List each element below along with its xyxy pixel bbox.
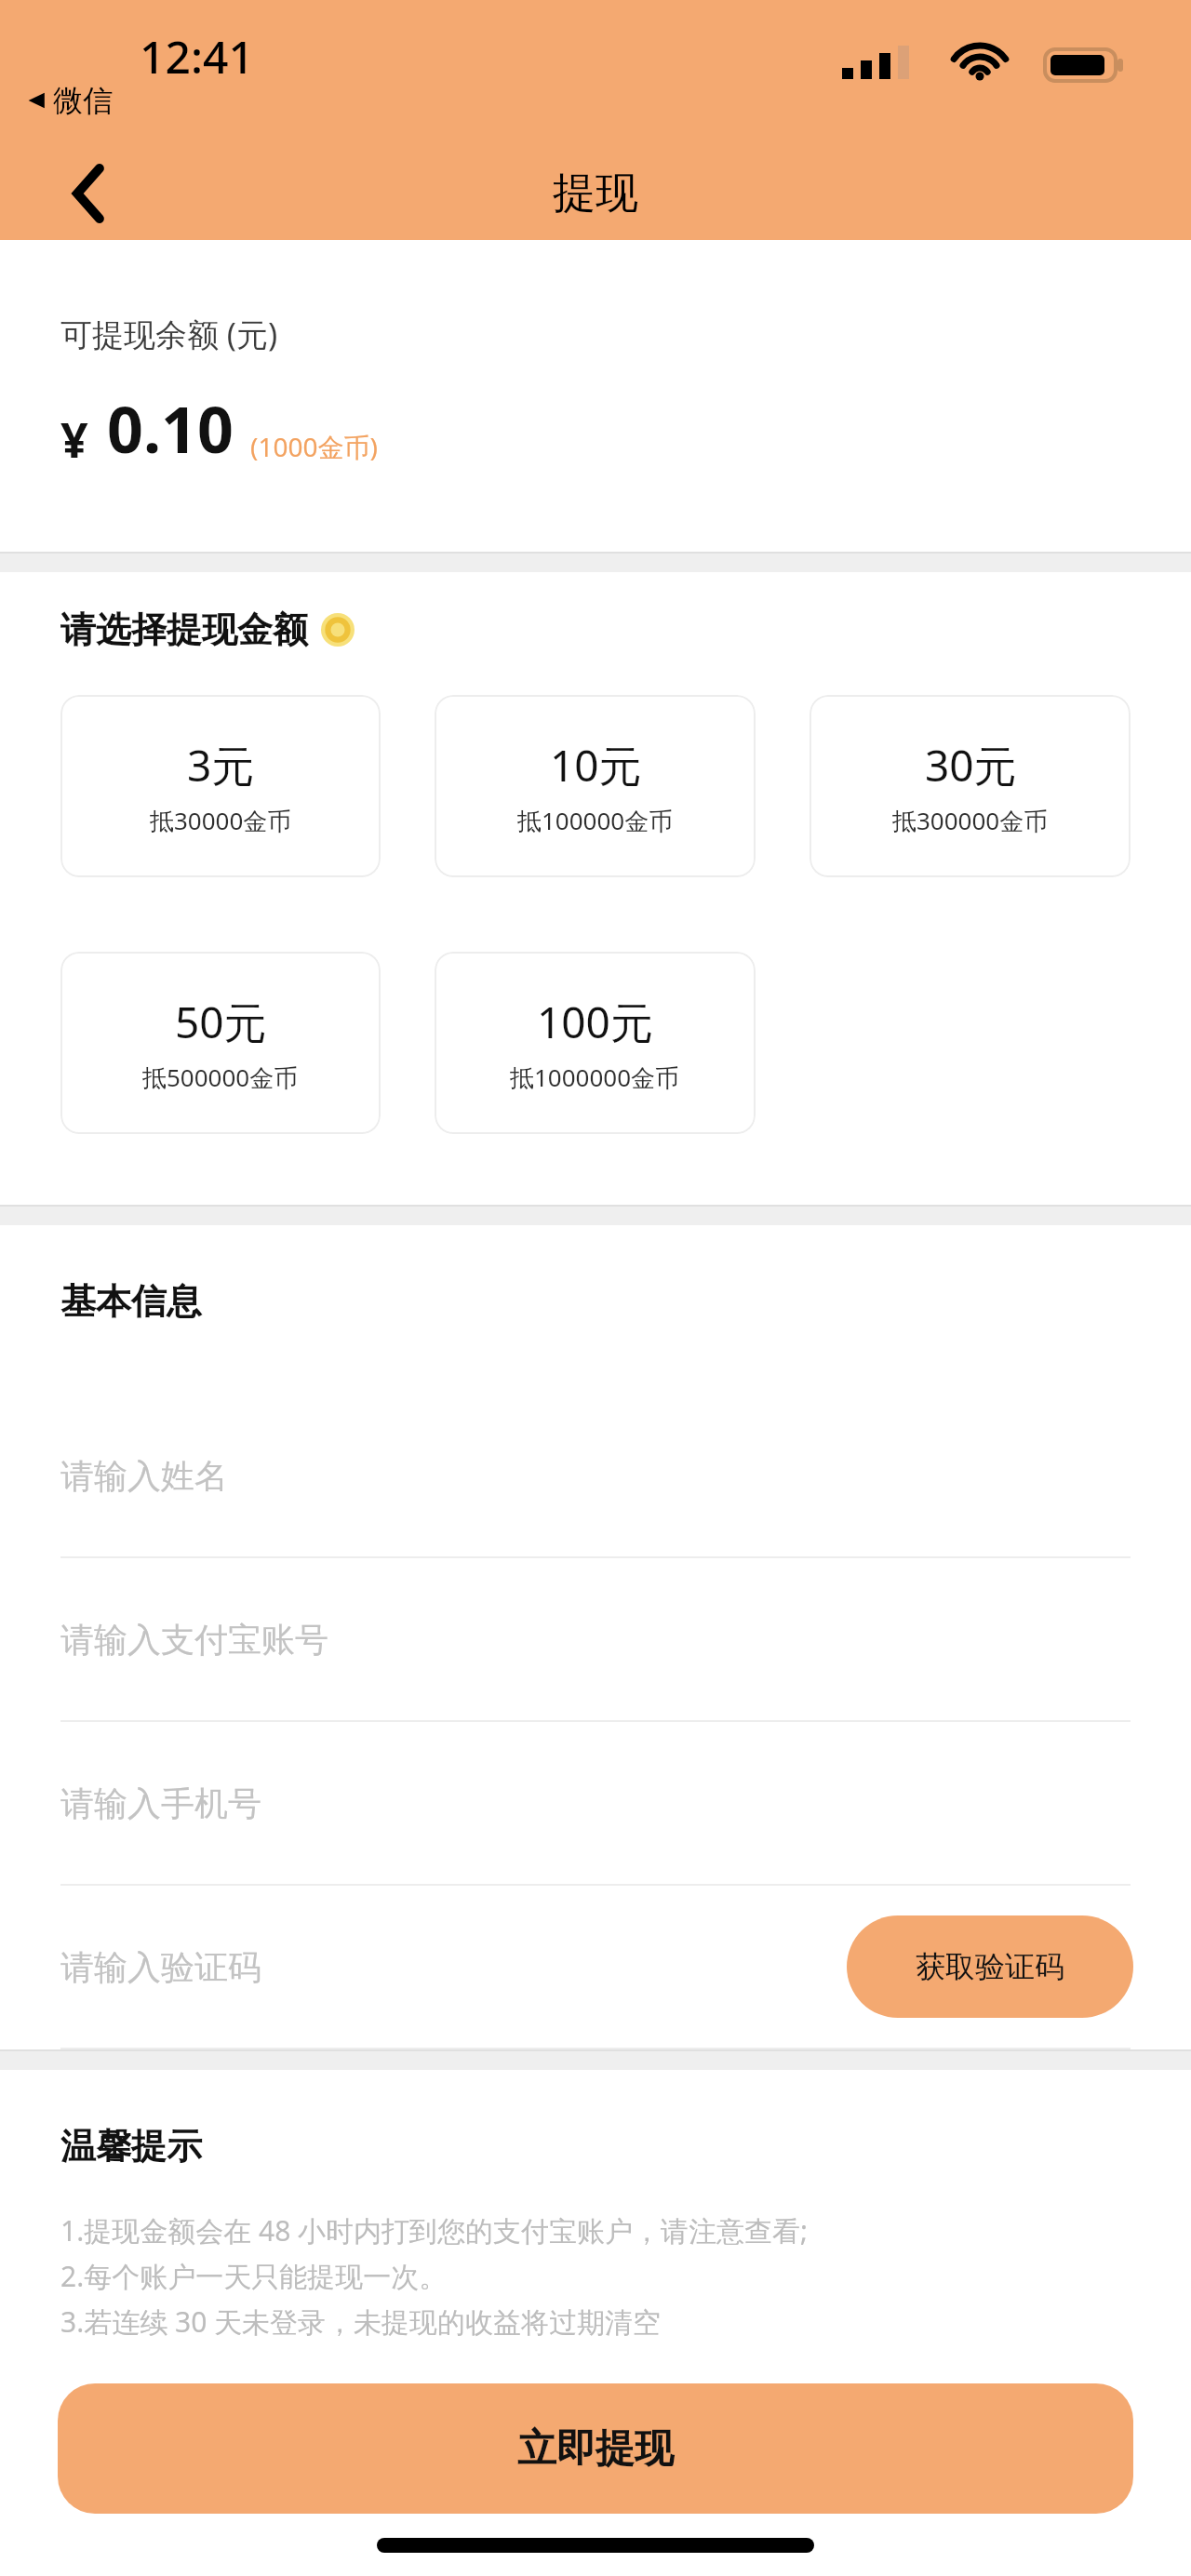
staticText: 抵500000金币 <box>142 1061 299 1094</box>
staticText: 温馨提示 <box>60 2124 202 2169</box>
staticText: 立即提现 <box>517 2424 674 2474</box>
staticText: 12:41 <box>140 26 254 87</box>
staticText: (1000金币) <box>250 429 378 464</box>
button[interactable]: 100元 <box>435 952 756 1134</box>
button[interactable]: 10元 <box>435 695 756 877</box>
staticText: 3.若连续 30 天未登录，未提现的收益将过期清空 <box>60 2302 662 2341</box>
staticText: 请输入验证码 <box>60 1946 261 1988</box>
staticText: 可提现余额 (元) <box>60 313 278 355</box>
button[interactable]: 请输入手机号 <box>0 1722 1191 1884</box>
staticText: 0.10 <box>107 385 234 472</box>
staticText: 50元 <box>175 993 267 1051</box>
staticText: 提现 <box>553 167 638 220</box>
staticText: 抵300000金币 <box>892 804 1049 837</box>
staticText: 请输入手机号 <box>60 1782 261 1824</box>
button[interactable]: 微信 <box>26 82 113 119</box>
button[interactable]: 立即提现 <box>58 2383 1133 2514</box>
staticText: 抵1000000金币 <box>510 1061 680 1094</box>
staticText: 1.提现金额会在 48 小时内打到您的支付宝账户，请注意查看; <box>60 2211 809 2249</box>
button[interactable]: 请输入姓名 <box>0 1395 1191 1556</box>
button[interactable]: 3元 <box>60 695 381 877</box>
button[interactable]: 请输入验证码 <box>0 1886 1191 2048</box>
button[interactable]: 获取验证码 <box>847 1915 1133 2018</box>
staticText: ¥ <box>60 406 88 472</box>
button[interactable]: 请输入支付宝账号 <box>0 1558 1191 1720</box>
staticText: 30元 <box>925 736 1017 794</box>
staticText: 100元 <box>537 993 653 1051</box>
staticText: 基本信息 <box>60 1279 202 1324</box>
staticText: 2.每个账户一天只能提现一次。 <box>60 2257 448 2295</box>
staticText: 3元 <box>187 736 255 794</box>
staticText: 获取验证码 <box>916 1948 1064 1985</box>
staticText: 抵100000金币 <box>517 804 674 837</box>
button[interactable]: Back <box>45 149 134 238</box>
staticText: 请输入姓名 <box>60 1455 228 1497</box>
staticText: 请输入支付宝账号 <box>60 1619 328 1661</box>
staticText: 请选择提现金额 <box>60 607 308 652</box>
button[interactable]: 50元 <box>60 952 381 1134</box>
staticText: 抵30000金币 <box>150 804 292 837</box>
button[interactable]: 30元 <box>810 695 1131 877</box>
staticText: 10元 <box>550 736 642 794</box>
staticText: 微信 <box>53 82 113 119</box>
